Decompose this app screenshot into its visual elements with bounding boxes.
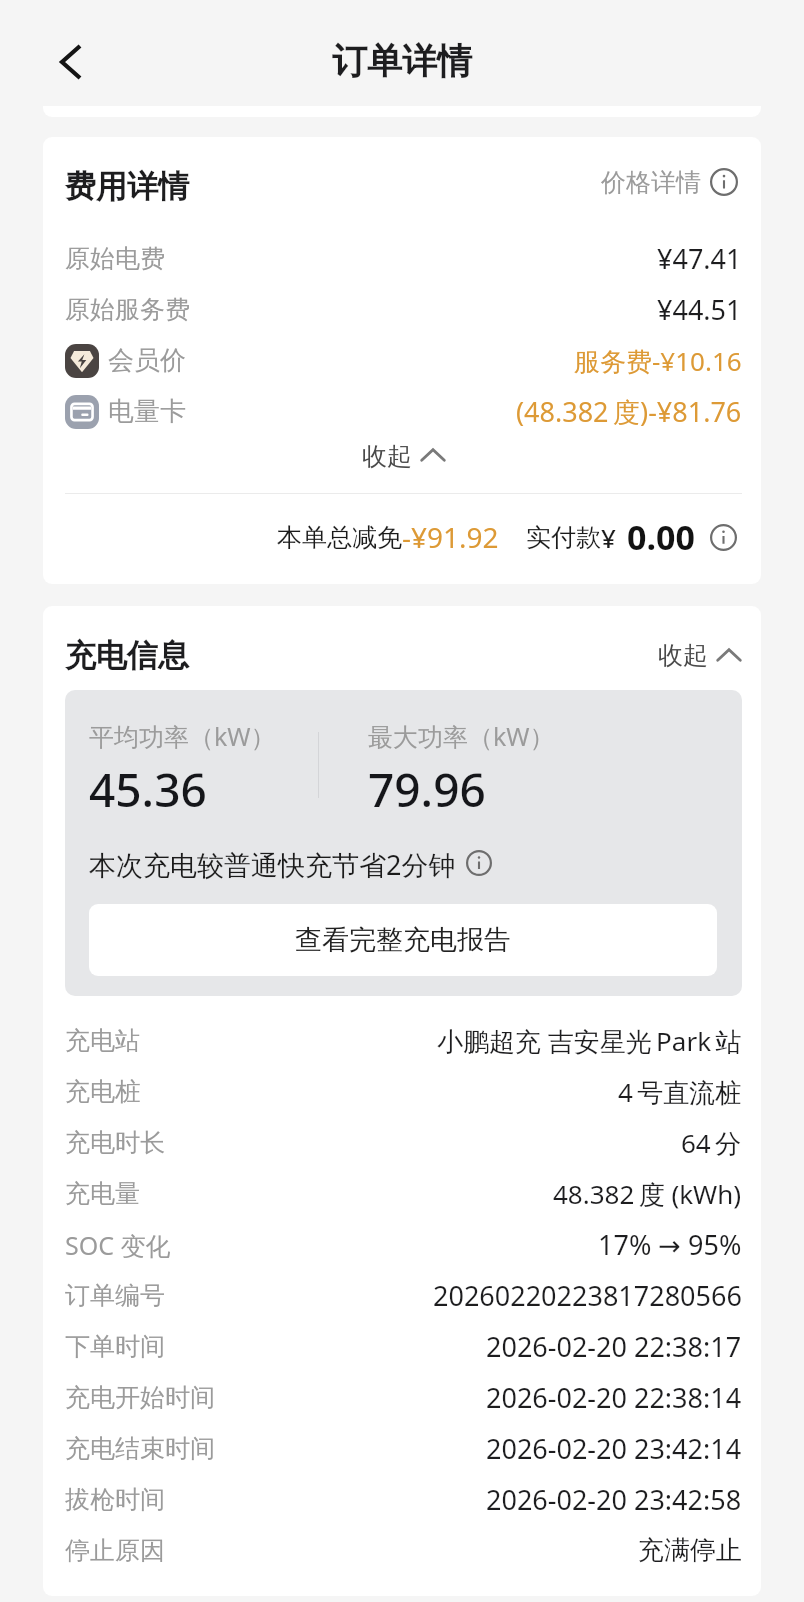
button[interactable]: SOC 变化 xyxy=(65,1219,742,1270)
staticText: 充电量 xyxy=(65,1178,140,1209)
staticText: 4 号直流桩 xyxy=(618,1074,742,1110)
button[interactable]: 充电开始时间 xyxy=(65,1372,742,1423)
button[interactable]: 原始电费 xyxy=(65,233,742,284)
staticText: 0.00 xyxy=(627,514,695,560)
button[interactable]: 充电桩 xyxy=(65,1066,742,1117)
staticText: 45.36 xyxy=(89,758,207,821)
staticText: SOC 变化 xyxy=(65,1228,171,1262)
button[interactable]: 充电量 xyxy=(65,1168,742,1219)
staticText: (48.382 度)-¥81.76 xyxy=(516,393,742,430)
staticText: 2026-02-20 22:38:17 xyxy=(486,1328,742,1365)
button[interactable]: 本次充电较普通快充节省2分钟 xyxy=(89,846,492,880)
button[interactable]: 价格详情 xyxy=(601,154,742,210)
staticText: 79.96 xyxy=(368,758,486,821)
button[interactable]: 原始服务费 xyxy=(65,284,742,335)
staticText: 实付款 xyxy=(526,522,601,553)
staticText: 服务费-¥10.16 xyxy=(574,343,742,379)
staticText: 价格详情 xyxy=(601,167,701,198)
staticText: 收起 xyxy=(658,640,708,671)
staticText: ¥44.51 xyxy=(657,291,742,328)
staticText: 会员价 xyxy=(108,344,186,377)
staticText: 充满停止 xyxy=(638,1534,742,1567)
staticText: 充电站 xyxy=(65,1025,140,1056)
staticText: 20260220223817280566 xyxy=(433,1277,742,1314)
button[interactable]: Back xyxy=(42,33,100,91)
staticText: 订单编号 xyxy=(65,1280,165,1311)
staticText: 最大功率（kW） xyxy=(368,719,555,753)
button[interactable]: 充电时长 xyxy=(65,1117,742,1168)
staticText: 小鹏超充 吉安星光 Park 站 xyxy=(437,1023,742,1059)
staticText: 本次充电较普通快充节省2分钟 xyxy=(89,846,456,880)
staticText: 下单时间 xyxy=(65,1331,165,1362)
button[interactable]: 充电结束时间 xyxy=(65,1423,742,1474)
staticText: 本单总减免 xyxy=(277,522,402,553)
staticText: ¥ xyxy=(601,520,616,555)
staticText: -¥91.92 xyxy=(402,518,499,556)
button[interactable]: 停止原因 xyxy=(65,1525,742,1576)
staticText: 原始电费 xyxy=(65,243,165,274)
staticText: 17% → 95% xyxy=(598,1226,742,1263)
button[interactable]: 会员价 xyxy=(65,335,742,386)
staticText: 原始服务费 xyxy=(65,294,190,325)
staticText: 64 分 xyxy=(681,1125,742,1161)
staticText: 充电时长 xyxy=(65,1127,165,1158)
staticText: 订单详情 xyxy=(332,39,472,83)
staticText: 充电桩 xyxy=(65,1076,140,1107)
button[interactable]: 查看完整充电报告 xyxy=(89,904,717,976)
staticText: 停止原因 xyxy=(65,1535,165,1566)
button[interactable]: Payment details xyxy=(710,524,737,551)
staticText: ¥47.41 xyxy=(657,240,742,277)
button[interactable]: 收起 xyxy=(362,441,446,469)
staticText: 平均功率（kW） xyxy=(89,719,276,753)
staticText: 拔枪时间 xyxy=(65,1484,165,1515)
button[interactable]: 充电站 xyxy=(65,1015,742,1066)
button[interactable]: 下单时间 xyxy=(65,1321,742,1372)
staticText: 电量卡 xyxy=(108,395,186,428)
button[interactable]: 订单编号 xyxy=(65,1270,742,1321)
staticText: 充电信息 xyxy=(65,636,189,675)
staticText: 2026-02-20 23:42:58 xyxy=(486,1481,742,1518)
staticText: 费用详情 xyxy=(65,167,189,206)
staticText: 收起 xyxy=(362,441,412,469)
button[interactable]: 收起 xyxy=(658,629,742,681)
button[interactable]: 电量卡 xyxy=(65,386,742,437)
staticText: 充电开始时间 xyxy=(65,1382,215,1413)
staticText: 查看完整充电报告 xyxy=(295,923,511,957)
button[interactable]: 拔枪时间 xyxy=(65,1474,742,1525)
staticText: 48.382 度 (kWh) xyxy=(553,1176,742,1212)
staticText: 2026-02-20 22:38:14 xyxy=(486,1379,742,1416)
staticText: 充电结束时间 xyxy=(65,1433,215,1464)
staticText: 2026-02-20 23:42:14 xyxy=(486,1430,742,1467)
